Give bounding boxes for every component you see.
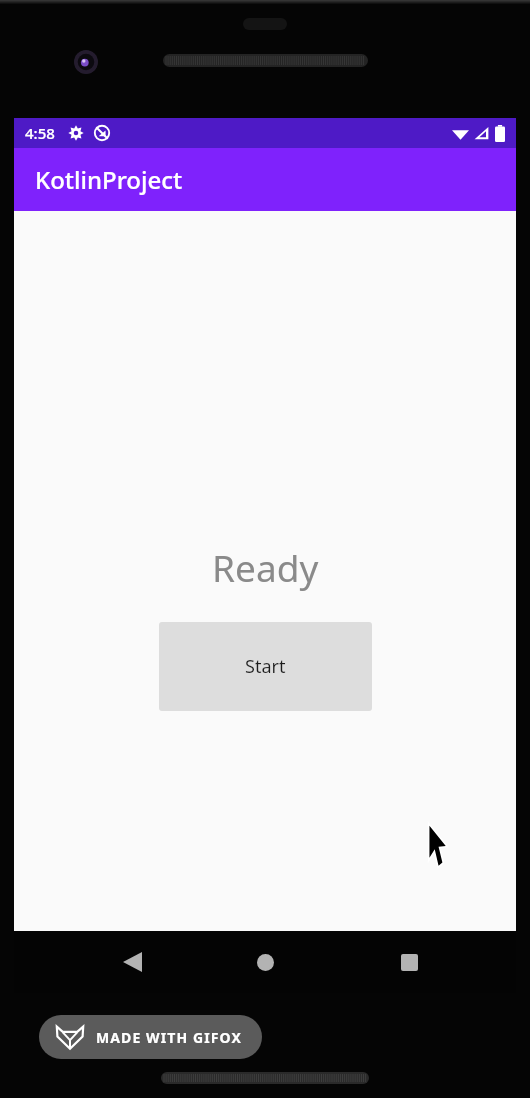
staticText: Start	[245, 654, 286, 679]
staticText: Ready	[212, 542, 319, 592]
button[interactable]: Home	[225, 931, 305, 993]
button[interactable]: Back	[92, 931, 172, 993]
button[interactable]: Recent apps	[369, 931, 449, 993]
staticText: 4:58	[25, 123, 55, 143]
staticText: KotlinProject	[35, 163, 183, 196]
button[interactable]: Start	[159, 622, 372, 711]
staticText: MADE WITH GIFOX	[96, 1028, 242, 1047]
